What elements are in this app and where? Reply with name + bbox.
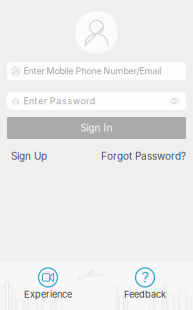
button[interactable]: Forgot Password? bbox=[101, 150, 186, 162]
staticText: Feedback bbox=[124, 289, 166, 300]
staticText: ? bbox=[141, 269, 148, 286]
button[interactable]: Experience bbox=[16, 267, 80, 301]
staticText: Sign In bbox=[80, 122, 112, 134]
button[interactable]: Sign Up bbox=[11, 150, 47, 162]
staticText: Sign Up bbox=[11, 150, 47, 162]
staticText: Enter Password bbox=[23, 96, 95, 106]
staticText: Enter Mobile Phone Number/Email bbox=[23, 66, 161, 76]
staticText: Experience bbox=[24, 289, 72, 300]
staticText: Forgot Password? bbox=[101, 150, 186, 162]
button[interactable]: Sign In bbox=[7, 117, 186, 139]
button[interactable]: ? bbox=[113, 267, 177, 301]
